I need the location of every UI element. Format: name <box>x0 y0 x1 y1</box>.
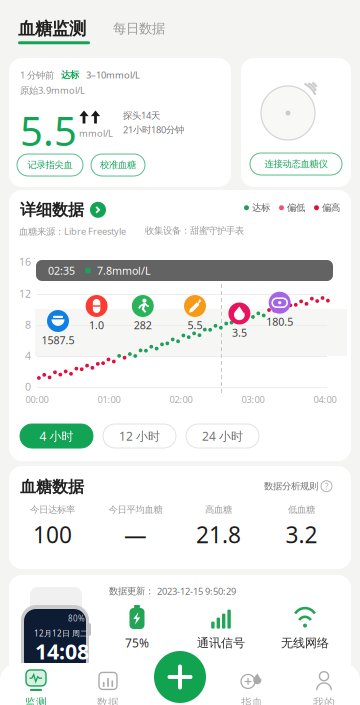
staticText: 24 小时 <box>202 428 243 444</box>
staticText: 0 <box>25 379 31 394</box>
staticText: 数据 <box>97 696 119 705</box>
staticText: 血糖数据 <box>20 477 84 497</box>
staticText: 每日数据 <box>113 20 165 37</box>
staticText: 04:00 <box>313 393 336 406</box>
staticText: 12月12日 周二 <box>34 628 88 639</box>
staticText: 血糖监测 <box>18 18 86 39</box>
button[interactable]: 指血 <box>216 668 288 705</box>
staticText: 80% <box>68 613 85 624</box>
staticText: 偏低 <box>287 202 305 213</box>
staticText: 01:00 <box>97 393 120 406</box>
staticText: 2023-12-15 9:50:29 <box>157 585 236 597</box>
button[interactable]: 12 小时 <box>103 424 176 448</box>
button[interactable]: 监测 <box>0 668 72 705</box>
button[interactable]: 查看详细数据 <box>90 202 106 218</box>
staticText: 今日达标率 <box>30 504 75 515</box>
staticText: 00:00 <box>25 393 48 406</box>
staticText: 高血糖 <box>205 504 232 515</box>
staticText: 8 <box>25 317 31 332</box>
staticText: mmol/L <box>79 127 113 139</box>
button[interactable]: 每日数据 <box>113 19 173 38</box>
staticText: 记录指尖血 <box>27 159 72 171</box>
staticText: 3.2 <box>285 519 317 550</box>
staticText: 低血糖 <box>288 504 315 515</box>
button[interactable]: 我的 <box>288 668 360 705</box>
staticText: 4 小时 <box>39 428 73 444</box>
staticText: 数据分析规则 <box>264 480 318 492</box>
staticText: 3.5 <box>232 325 247 340</box>
button[interactable]: 连接动态血糖仪 <box>250 153 342 175</box>
staticText: 180.5 <box>266 315 293 329</box>
staticText: 今日平均血糖 <box>108 504 162 515</box>
staticText: 探头14天 <box>123 109 160 121</box>
staticText: 1 分钟前 <box>20 69 54 81</box>
button[interactable]: 4 小时 <box>20 424 93 448</box>
button[interactable]: 血糖监测 <box>18 18 90 42</box>
staticText: 75% <box>125 635 149 651</box>
staticText: — <box>124 519 147 550</box>
staticText: 偏高 <box>322 202 340 213</box>
staticText: 血糖来源：Libre Freestyle <box>19 225 126 237</box>
staticText: 收集设备：甜蜜守护手表 <box>145 225 244 236</box>
button[interactable]: 添加记录 <box>154 651 206 703</box>
staticText: ? <box>324 480 328 492</box>
staticText: 我的 <box>313 696 335 705</box>
staticText: 达标 <box>61 69 79 81</box>
staticText: 达标 <box>252 202 270 213</box>
button[interactable]: 记录指尖血 <box>17 154 83 176</box>
staticText: 数据更新： <box>109 585 154 597</box>
staticText: 02:00 <box>169 393 192 406</box>
staticText: 原始3.9mmol/L <box>20 84 85 96</box>
staticText: 5.5 <box>20 104 77 157</box>
staticText: 03:00 <box>241 393 264 406</box>
button[interactable]: 校准血糖 <box>91 154 145 176</box>
staticText: 12 小时 <box>119 428 160 444</box>
staticText: 21小时180分钟 <box>123 123 184 136</box>
staticText: 1.0 <box>89 318 104 332</box>
staticText: 7.8mmol/L <box>97 263 151 278</box>
staticText: 100 <box>33 519 72 550</box>
staticText: 校准血糖 <box>100 159 136 171</box>
staticText: 监测 <box>25 696 47 705</box>
staticText: 02:35 <box>48 263 75 278</box>
button[interactable]: 数据 <box>72 668 144 705</box>
staticText: 5.5 <box>187 318 202 332</box>
staticText: 3–10mmol/L <box>86 69 140 81</box>
staticText: 1587.5 <box>41 333 74 347</box>
staticText: 无线网络 <box>281 636 329 650</box>
staticText: 4 <box>25 348 31 363</box>
staticText: 21.8 <box>196 519 241 550</box>
staticText: 连接动态血糖仪 <box>264 158 327 170</box>
staticText: 指血 <box>241 696 263 705</box>
staticText: 12 <box>19 286 31 301</box>
staticText: 通讯信号 <box>197 636 245 650</box>
button[interactable]: 数据分析规则 <box>264 480 332 492</box>
staticText: 16 <box>19 254 31 269</box>
staticText: 详细数据 <box>20 200 84 220</box>
button[interactable]: 24 小时 <box>186 424 259 448</box>
staticText: 282 <box>134 318 152 332</box>
staticText: 14:08 <box>35 637 89 665</box>
